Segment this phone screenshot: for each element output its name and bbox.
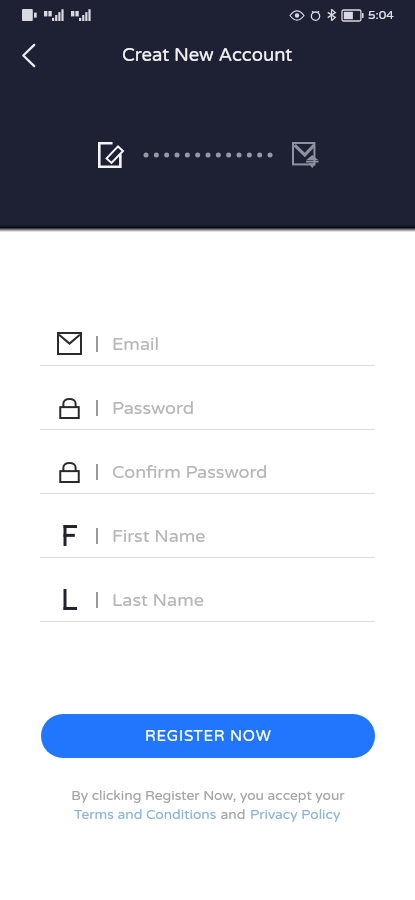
button[interactable]: First Name xyxy=(40,494,375,558)
button[interactable]: Email xyxy=(40,302,375,366)
staticText: Email xyxy=(112,333,159,355)
staticText: Password xyxy=(112,397,195,419)
staticText: and xyxy=(217,806,250,823)
staticText: REGISTER NOW xyxy=(145,727,272,745)
button[interactable]: Back xyxy=(6,33,50,77)
staticText: By clicking Register Now, you accept you… xyxy=(71,787,345,804)
staticText: First Name xyxy=(112,525,206,547)
staticText: Creat New Account xyxy=(122,44,293,66)
button[interactable]: Compose message xyxy=(95,139,127,171)
button[interactable]: Password xyxy=(40,366,375,430)
button[interactable]: Terms and Conditions xyxy=(74,806,217,823)
staticText: 5:04 xyxy=(368,8,394,22)
button[interactable]: Verify email xyxy=(289,139,321,171)
staticText: Last Name xyxy=(112,589,204,611)
button[interactable]: Confirm Password xyxy=(40,430,375,494)
staticText: Confirm Password xyxy=(112,461,268,483)
button[interactable]: Privacy Policy xyxy=(250,806,341,823)
button[interactable]: REGISTER NOW xyxy=(41,714,375,758)
button[interactable]: Last Name xyxy=(40,558,375,622)
